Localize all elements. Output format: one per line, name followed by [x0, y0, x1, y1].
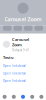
button[interactable]: [13, 26, 22, 31]
staticText: Today at 9:41: [12, 48, 30, 52]
button[interactable]: Open link detail: [0, 77, 46, 85]
button[interactable]: Tab: [37, 95, 46, 100]
button[interactable]: Open link detail: [0, 62, 46, 70]
staticText: Open link detail: [3, 64, 26, 68]
button[interactable]: [24, 26, 32, 31]
button[interactable]: [34, 26, 43, 31]
button[interactable]: Tab: [18, 95, 28, 100]
button[interactable]: Tab: [0, 95, 9, 100]
button[interactable]: Tab: [28, 95, 37, 100]
staticText: Carousel Zoom: [4, 16, 41, 23]
button[interactable]: Open link detail: [0, 70, 46, 77]
staticText: Carousel Zoom: [12, 37, 29, 47]
button[interactable]: [3, 26, 11, 31]
staticText: Tests:: [3, 55, 14, 60]
staticText: Open link detail: [3, 72, 26, 75]
button[interactable]: Tab: [9, 95, 18, 100]
staticText: Open link detail: [3, 79, 26, 83]
